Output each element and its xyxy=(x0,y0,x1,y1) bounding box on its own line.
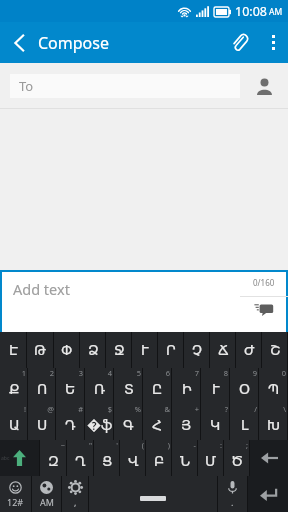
staticText: Add text xyxy=(13,279,70,299)
button[interactable] xyxy=(94,440,120,476)
staticText: Ջ xyxy=(114,342,125,358)
button[interactable] xyxy=(120,440,146,476)
button[interactable] xyxy=(172,404,201,440)
staticText: Ե xyxy=(65,381,76,397)
button[interactable] xyxy=(56,368,85,404)
button[interactable] xyxy=(198,440,224,476)
button[interactable] xyxy=(224,440,250,476)
button[interactable] xyxy=(114,404,143,440)
button[interactable]: Change language xyxy=(32,476,61,512)
staticText: 0/160 xyxy=(253,277,275,288)
staticText: Ղ xyxy=(75,453,86,469)
button[interactable] xyxy=(89,476,217,512)
staticText: abc xyxy=(1,455,10,462)
button[interactable]: Settings xyxy=(62,476,88,512)
staticText: Կ xyxy=(210,417,221,433)
staticText: ( xyxy=(141,440,144,450)
button[interactable] xyxy=(262,332,288,368)
staticText: Մ xyxy=(205,453,217,469)
button[interactable] xyxy=(56,404,85,440)
staticText: Փ xyxy=(61,342,73,358)
staticText: + xyxy=(194,404,199,414)
staticText: 10:08 xyxy=(235,3,267,20)
staticText: Ւ xyxy=(212,381,220,397)
button[interactable] xyxy=(210,332,236,368)
button[interactable] xyxy=(0,332,27,368)
button[interactable] xyxy=(236,332,262,368)
staticText: 12# xyxy=(7,496,24,508)
staticText: Ծ xyxy=(231,453,244,469)
button[interactable] xyxy=(0,368,28,404)
staticText: Ա xyxy=(9,417,20,433)
staticText: ; xyxy=(245,440,248,450)
button[interactable] xyxy=(114,368,143,404)
button[interactable]: Attach xyxy=(220,22,258,63)
button[interactable] xyxy=(146,440,172,476)
button[interactable]: Emoji and symbols xyxy=(0,476,31,512)
staticText: % xyxy=(134,404,141,414)
button[interactable] xyxy=(28,368,56,404)
button[interactable] xyxy=(85,404,114,440)
staticText: Ր xyxy=(166,342,176,358)
button[interactable]: Pick contact xyxy=(250,72,278,100)
staticText: # xyxy=(78,404,83,414)
staticText: 5 xyxy=(136,368,141,378)
button[interactable] xyxy=(0,404,28,440)
staticText: Ժ xyxy=(244,342,255,358)
staticText: 8 xyxy=(223,368,228,378)
button[interactable] xyxy=(85,368,114,404)
button[interactable] xyxy=(259,368,288,404)
button[interactable]: To xyxy=(10,74,240,98)
button[interactable] xyxy=(230,404,259,440)
button[interactable] xyxy=(106,332,132,368)
staticText: �ֆ xyxy=(87,415,113,434)
button[interactable] xyxy=(230,368,259,404)
button[interactable] xyxy=(67,440,94,476)
staticText: / xyxy=(254,404,257,414)
staticText: ? xyxy=(224,404,228,414)
button[interactable]: Voice input xyxy=(218,476,247,512)
staticText: Ո xyxy=(37,381,48,397)
staticText: Յ xyxy=(181,417,192,433)
staticText: Է xyxy=(9,342,18,358)
staticText: 7 xyxy=(194,368,199,378)
staticText: AM xyxy=(40,496,54,508)
staticText: Ճ xyxy=(218,342,229,358)
button[interactable] xyxy=(143,368,172,404)
staticText: Compose xyxy=(38,32,109,54)
staticText: & xyxy=(164,404,170,414)
button[interactable]: Shift xyxy=(0,440,39,476)
button[interactable] xyxy=(40,440,67,476)
button[interactable] xyxy=(27,332,54,368)
button[interactable] xyxy=(158,332,184,368)
staticText: Ն xyxy=(180,453,191,469)
staticText: Լ xyxy=(241,417,249,433)
button[interactable]: Backspace xyxy=(250,440,288,476)
staticText: ) xyxy=(167,440,170,450)
staticText: ' xyxy=(116,440,118,450)
button[interactable] xyxy=(132,332,158,368)
button[interactable]: Add text xyxy=(0,270,288,332)
staticText: Խ xyxy=(267,417,280,433)
staticText: Թ xyxy=(34,342,47,358)
button[interactable] xyxy=(259,404,288,440)
button[interactable] xyxy=(28,404,56,440)
staticText: Դ xyxy=(65,417,76,433)
staticText: ~ xyxy=(60,440,65,450)
button[interactable] xyxy=(201,404,230,440)
staticText: 1 xyxy=(21,368,26,378)
staticText: 6 xyxy=(165,368,170,378)
button[interactable] xyxy=(201,368,230,404)
button[interactable]: Enter xyxy=(248,476,288,512)
button[interactable] xyxy=(172,368,201,404)
staticText: To xyxy=(19,77,34,95)
button[interactable] xyxy=(80,332,106,368)
button[interactable] xyxy=(172,440,198,476)
staticText: Ռ xyxy=(94,381,106,397)
button[interactable] xyxy=(143,404,172,440)
staticText: Բ xyxy=(154,453,165,469)
button[interactable] xyxy=(184,332,210,368)
button[interactable]: Back xyxy=(0,22,38,63)
button[interactable] xyxy=(54,332,80,368)
button[interactable]: More options xyxy=(258,22,288,63)
